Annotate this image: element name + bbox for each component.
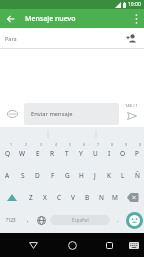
button[interactable]: T: [60, 142, 74, 164]
staticText: B: [85, 193, 90, 202]
button[interactable]: S: [15, 164, 30, 186]
staticText: ?123: [6, 217, 16, 223]
button[interactable]: [26, 238, 40, 252]
staticText: H: [79, 171, 84, 180]
button[interactable]: V: [66, 186, 80, 208]
staticText: N: [99, 193, 104, 202]
staticText: K: [107, 171, 112, 180]
button[interactable]: E: [30, 142, 45, 164]
staticText: D: [35, 171, 40, 180]
button[interactable]: O: [116, 142, 130, 164]
staticText: T: [65, 149, 69, 158]
staticText: M: [112, 193, 118, 202]
staticText: E: [36, 149, 40, 158]
button[interactable]: ?123: [0, 208, 21, 232]
button[interactable]: [6, 107, 19, 120]
staticText: Mensaje nuevo: [25, 14, 76, 24]
button[interactable]: L: [116, 164, 130, 186]
button[interactable]: Español: [50, 215, 110, 225]
button[interactable]: [125, 109, 138, 122]
staticText: 9: [125, 142, 128, 147]
staticText: A: [5, 171, 10, 180]
staticText: Z: [29, 193, 33, 202]
button[interactable]: Ñ: [130, 164, 144, 186]
button[interactable]: R: [45, 142, 60, 164]
staticText: L: [121, 171, 125, 180]
staticText: G: [65, 171, 70, 180]
button[interactable]: U: [88, 142, 102, 164]
staticText: 148 / 1: [125, 103, 138, 108]
button[interactable]: K: [102, 164, 116, 186]
staticText: 10:00: [128, 1, 141, 8]
staticText: Y: [79, 149, 83, 158]
button[interactable]: N: [94, 186, 108, 208]
staticText: V: [71, 193, 75, 202]
staticText: 0: [139, 142, 142, 147]
staticText: U: [93, 149, 98, 158]
button[interactable]: X: [38, 186, 52, 208]
button[interactable]: F: [45, 164, 60, 186]
staticText: F: [51, 171, 55, 180]
button[interactable]: Y: [74, 142, 88, 164]
staticText: Ñ: [135, 171, 140, 180]
staticText: 2: [25, 142, 28, 147]
staticText: .: [117, 216, 119, 224]
button[interactable]: Enviar mensaje: [24, 103, 119, 125]
button[interactable]: Z: [23, 186, 38, 208]
button[interactable]: W: [15, 142, 30, 164]
button[interactable]: [130, 13, 142, 25]
button[interactable]: [124, 208, 144, 232]
staticText: 1: [10, 142, 13, 147]
staticText: P: [135, 149, 139, 158]
staticText: 8: [111, 142, 114, 147]
button[interactable]: P: [130, 142, 144, 164]
staticText: ,: [27, 216, 29, 224]
staticText: I: [108, 149, 111, 158]
staticText: Enviar mensaje: [31, 110, 73, 118]
button[interactable]: [122, 186, 144, 208]
staticText: S: [21, 171, 25, 180]
button[interactable]: [0, 186, 23, 208]
button[interactable]: [65, 238, 79, 252]
staticText: 5: [69, 142, 72, 147]
button[interactable]: [125, 32, 137, 44]
button[interactable]: B: [80, 186, 94, 208]
button[interactable]: G: [60, 164, 74, 186]
staticText: R: [50, 149, 55, 158]
staticText: 3: [40, 142, 43, 147]
button[interactable]: C: [52, 186, 66, 208]
button[interactable]: I: [102, 142, 116, 164]
staticText: C: [57, 193, 62, 202]
button[interactable]: Q: [0, 142, 15, 164]
button[interactable]: [102, 238, 116, 252]
button[interactable]: .: [112, 208, 124, 232]
staticText: J: [94, 171, 96, 180]
button[interactable]: Para: [0, 28, 144, 48]
button[interactable]: J: [88, 164, 102, 186]
staticText: 7: [97, 142, 100, 147]
button[interactable]: [4, 12, 18, 26]
button[interactable]: M: [108, 186, 122, 208]
button[interactable]: D: [30, 164, 45, 186]
staticText: O: [120, 149, 126, 158]
button[interactable]: A: [0, 164, 15, 186]
staticText: X: [43, 193, 47, 202]
staticText: Para: [5, 35, 17, 42]
staticText: Español: [72, 217, 89, 223]
button[interactable]: [128, 239, 140, 251]
staticText: W: [19, 149, 26, 158]
button[interactable]: H: [74, 164, 88, 186]
staticText: Q: [5, 149, 11, 158]
staticText: 4: [55, 142, 58, 147]
button[interactable]: ,: [21, 208, 34, 232]
button[interactable]: [34, 208, 48, 232]
staticText: 6: [83, 142, 86, 147]
